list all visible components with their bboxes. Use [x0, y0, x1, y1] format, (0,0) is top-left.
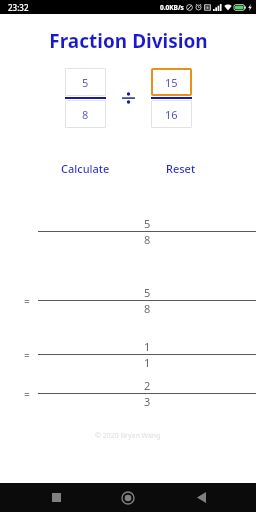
staticText: Calculate [61, 161, 110, 176]
staticText: 15 [165, 75, 178, 90]
button[interactable]: Reset [158, 157, 204, 180]
staticText: = [24, 294, 30, 308]
button[interactable]: Back [184, 483, 218, 512]
button[interactable]: Home [111, 483, 145, 512]
staticText: 8 [82, 107, 89, 122]
staticText: 5 [144, 285, 151, 300]
staticText: 5 [82, 75, 89, 90]
staticText: Reset [166, 161, 196, 176]
staticText: 8 [144, 301, 151, 316]
button[interactable]: 8 [65, 100, 106, 128]
staticText: 2 [144, 378, 151, 393]
staticText: 16 [165, 107, 178, 122]
button[interactable]: 15 [151, 68, 192, 96]
staticText: 3 [144, 394, 151, 409]
button[interactable]: 5 [65, 68, 106, 96]
staticText: 1 [144, 355, 151, 370]
staticText: 8 [144, 232, 151, 247]
staticText: = [24, 387, 30, 401]
staticText: = [24, 348, 30, 362]
staticText: © 2020 Bryan Wang [95, 431, 161, 441]
staticText: 1 [144, 339, 151, 354]
staticText: 0.0KB/s [160, 3, 184, 12]
button[interactable]: Calculate [53, 157, 118, 180]
button[interactable]: 16 [151, 100, 192, 128]
staticText: 23:32 [8, 2, 29, 13]
button[interactable]: Recent apps [39, 483, 73, 512]
staticText: 5 [144, 216, 151, 231]
staticText: Fraction Division [49, 28, 208, 54]
